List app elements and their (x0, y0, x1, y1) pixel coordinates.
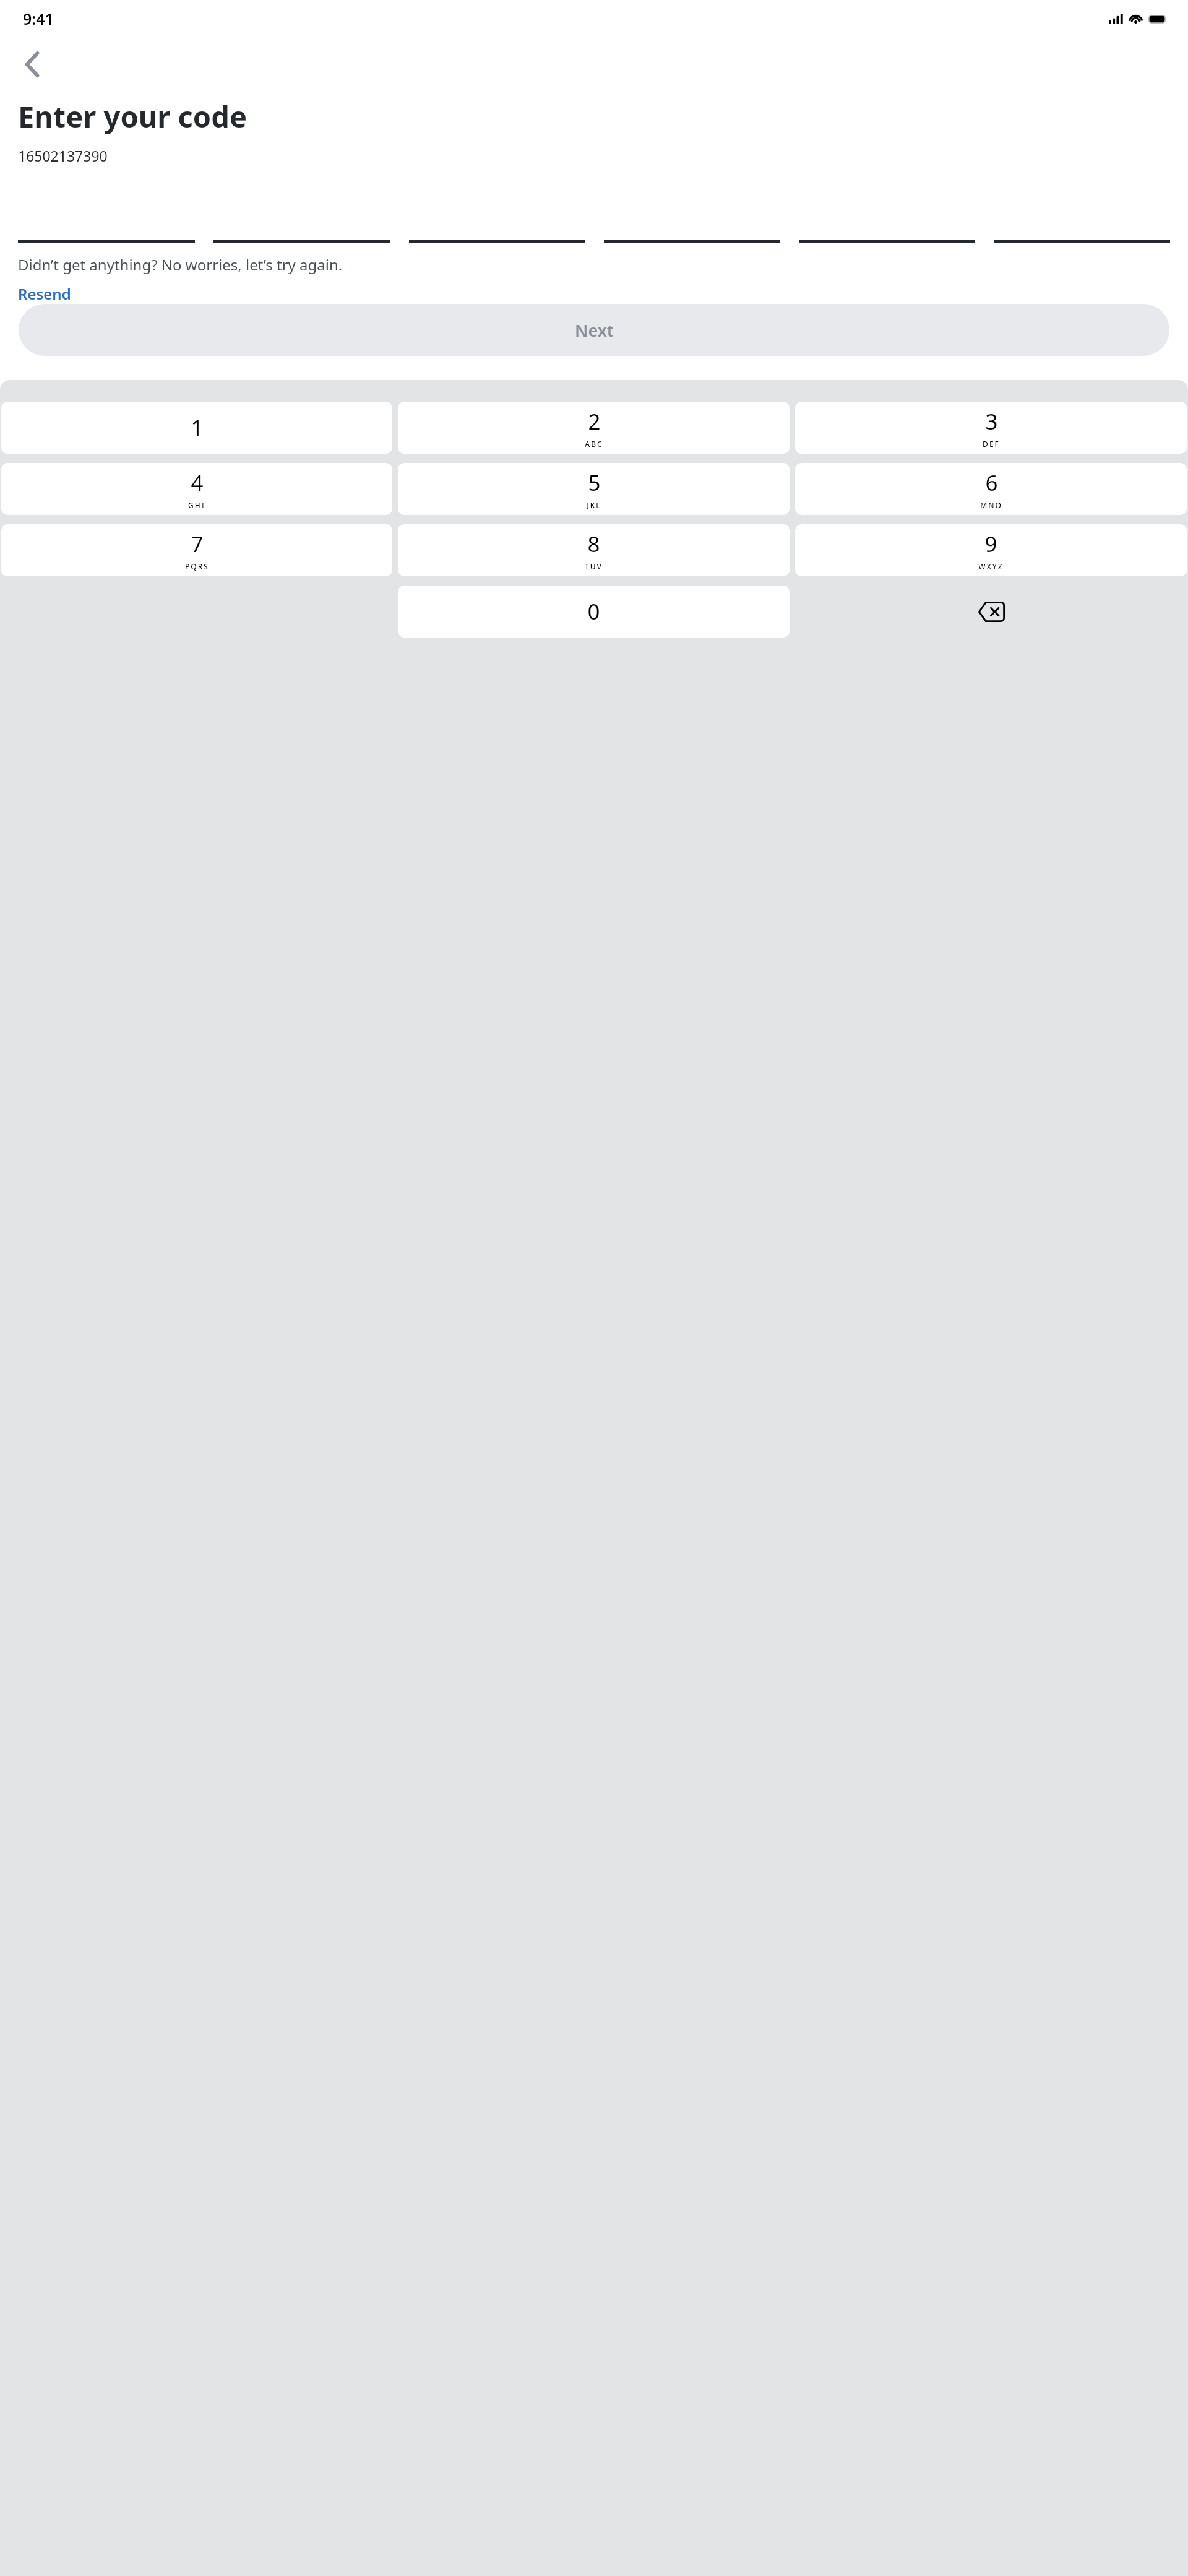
staticText: 16502137390 (18, 146, 108, 165)
staticText: 6 (985, 468, 998, 498)
staticText: Next (575, 319, 614, 342)
button[interactable]: 5 (398, 463, 790, 515)
staticText: WXYZ (978, 561, 1004, 571)
staticText: 0 (587, 597, 600, 626)
staticText: 9 (984, 529, 997, 559)
button[interactable] (799, 240, 975, 243)
button[interactable]: Back (15, 47, 49, 82)
staticText: Enter your code (18, 97, 247, 136)
staticText: 3 (985, 407, 998, 436)
button[interactable]: 0 (398, 586, 790, 638)
button[interactable] (213, 240, 390, 243)
staticText: GHI (188, 500, 205, 510)
staticText: 7 (191, 529, 204, 559)
button[interactable]: 9 (795, 524, 1187, 576)
staticText: ABC (585, 439, 603, 449)
staticText: 4 (191, 468, 204, 498)
button[interactable] (18, 240, 195, 243)
button[interactable]: 4 (1, 463, 392, 515)
button[interactable]: Next (19, 304, 1169, 356)
button[interactable]: 2 (398, 402, 790, 454)
button[interactable]: Resend (18, 283, 71, 304)
staticText: Resend (18, 283, 71, 304)
staticText: JKL (587, 500, 601, 510)
button[interactable]: Backspace (795, 586, 1187, 638)
button[interactable]: 1 (1, 402, 392, 454)
staticText: 2 (588, 407, 601, 436)
staticText: MNO (980, 500, 1002, 510)
staticText: DEF (983, 439, 1000, 449)
button[interactable]: 7 (1, 524, 392, 576)
button[interactable]: 6 (795, 463, 1187, 515)
staticText: Didn’t get anything? No worries, let’s t… (18, 254, 343, 275)
button[interactable]: 3 (795, 402, 1187, 454)
button[interactable] (409, 240, 585, 243)
staticText: 9:41 (23, 8, 54, 29)
button[interactable]: 8 (398, 524, 790, 576)
staticText: 5 (588, 468, 601, 498)
button[interactable] (604, 240, 780, 243)
staticText: 8 (587, 529, 600, 559)
button[interactable] (994, 240, 1170, 243)
staticText: TUV (585, 561, 603, 571)
staticText: PQRS (185, 561, 209, 571)
staticText: 1 (191, 413, 204, 443)
